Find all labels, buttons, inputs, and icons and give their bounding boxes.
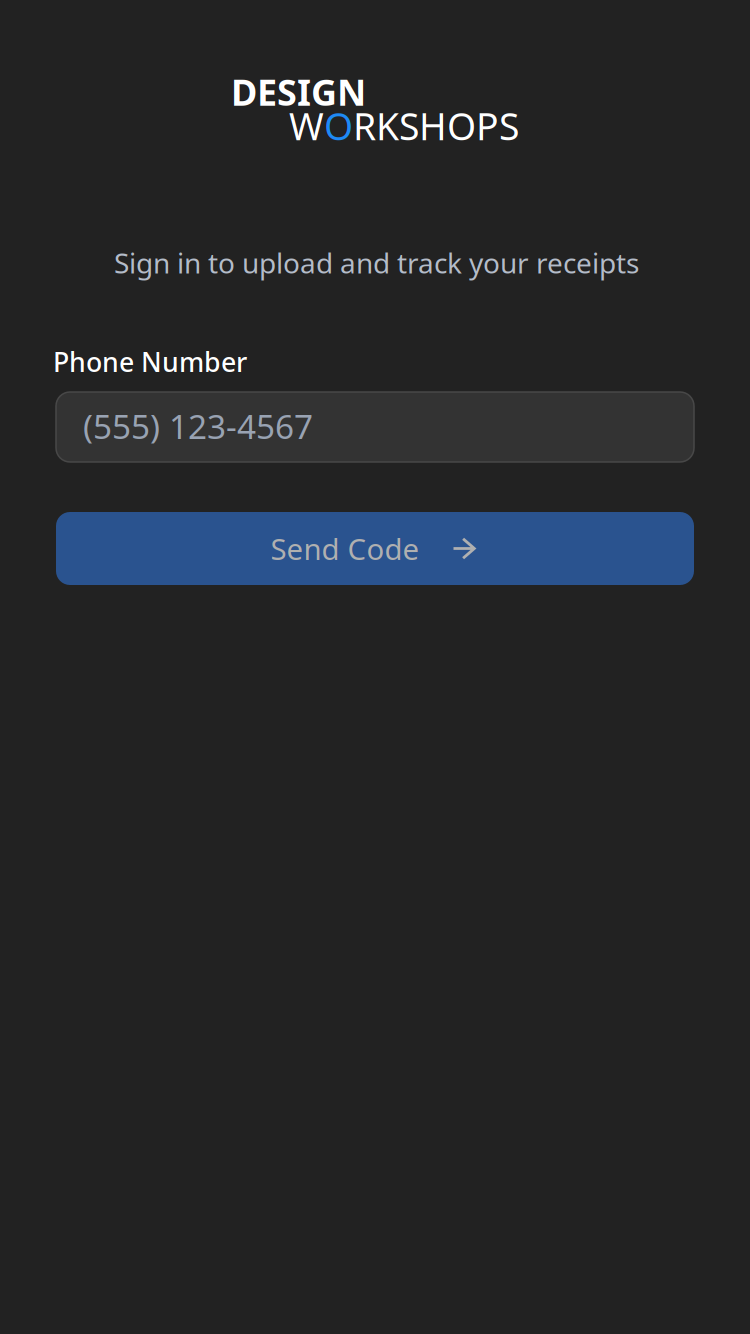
staticText: RKSHOPS [353, 101, 519, 151]
button[interactable]: Phone Number [56, 392, 694, 462]
button[interactable]: Send Code [56, 512, 694, 585]
staticText: W [289, 101, 324, 151]
staticText: Send Code [270, 529, 419, 568]
staticText: (555) 123-4567 [83, 404, 313, 448]
staticText: Sign in to upload and track your receipt… [114, 244, 639, 281]
staticText: DESIGN [231, 68, 366, 116]
staticText: Phone Number [53, 344, 247, 379]
staticText: O [324, 101, 353, 151]
